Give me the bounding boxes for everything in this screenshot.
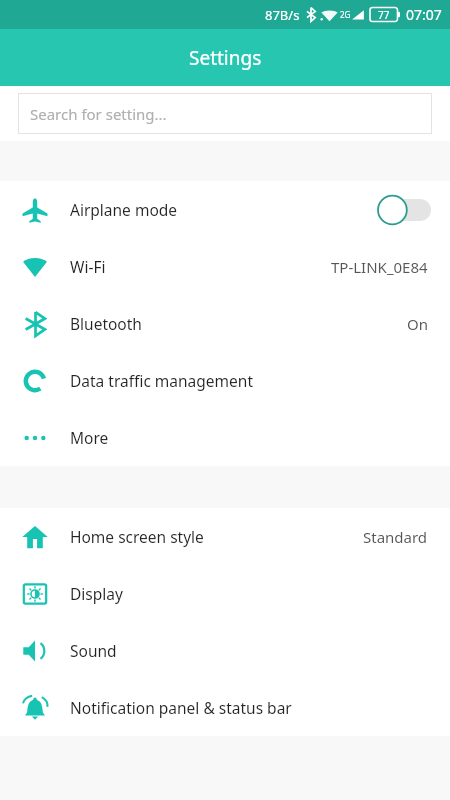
staticText: 87B/s [265, 6, 300, 24]
button[interactable]: Airplane mode [0, 181, 450, 238]
staticText: Sound [70, 640, 117, 661]
staticText: On [407, 314, 428, 334]
staticText: Data traffic management [70, 370, 253, 391]
staticText: Settings [189, 45, 262, 71]
staticText: Display [70, 583, 123, 604]
staticText: 2G [340, 9, 351, 20]
staticText: Home screen style [70, 526, 204, 547]
button[interactable]: Home screen style [0, 508, 450, 565]
button[interactable]: Sound [0, 622, 450, 679]
staticText: 07:07 [406, 5, 442, 24]
button[interactable]: Wi-Fi [0, 238, 450, 295]
button[interactable]: Display [0, 565, 450, 622]
staticText: More [70, 427, 109, 448]
button[interactable]: More [0, 409, 450, 466]
staticText: 77 [378, 8, 390, 22]
staticText: Airplane mode [70, 199, 178, 220]
staticText: Wi-Fi [70, 256, 106, 277]
button[interactable]: Search for setting... [18, 93, 432, 134]
staticText: Notification panel & status bar [70, 697, 292, 718]
staticText: TP-LINK_0E84 [331, 257, 428, 277]
staticText: Search for setting... [30, 104, 167, 124]
staticText: Standard [363, 527, 428, 547]
button[interactable]: Data traffic management [0, 352, 450, 409]
button[interactable]: Bluetooth [0, 295, 450, 352]
button[interactable]: Notification panel & status bar [0, 679, 450, 736]
button[interactable]: Airplane mode toggle [377, 195, 431, 225]
staticText: Bluetooth [70, 313, 142, 334]
